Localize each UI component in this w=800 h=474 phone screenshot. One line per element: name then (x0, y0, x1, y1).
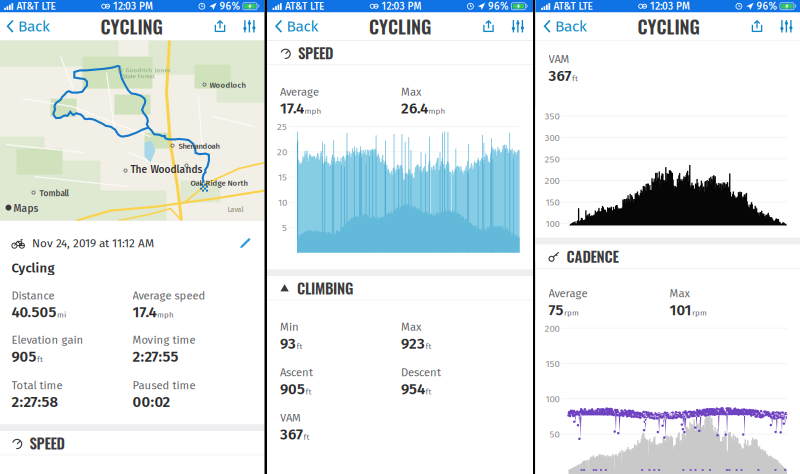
staticText: 5 (282, 222, 287, 234)
staticText: 905 (11, 348, 36, 366)
staticText: 20 (277, 146, 287, 158)
staticText: SPEED (29, 432, 64, 454)
staticText: VAM (548, 53, 569, 66)
staticText: Maps (13, 203, 38, 215)
staticText: 150 (545, 196, 559, 208)
staticText: mph (157, 310, 174, 320)
staticText: Woodloch (209, 81, 245, 90)
staticText: 75 (548, 301, 563, 319)
staticText: 17.4 (132, 303, 156, 321)
staticText: 96% (756, 0, 777, 12)
staticText: 367 (548, 67, 571, 85)
button[interactable]: Filter (503, 12, 533, 40)
staticText: Distance (11, 289, 54, 302)
button[interactable]: Edit (239, 237, 251, 249)
staticText: CLIMBING (297, 277, 353, 299)
staticText: 100 (545, 393, 559, 405)
staticText: 50 (549, 429, 559, 440)
staticText: mph (428, 106, 445, 116)
staticText: Cycling (11, 260, 54, 276)
staticText: Descent (401, 366, 441, 379)
staticText: ft (303, 432, 309, 442)
staticText: mi (57, 310, 66, 320)
button[interactable]: Share (742, 12, 771, 40)
staticText: Tomball (39, 189, 68, 198)
staticText: ft (572, 74, 578, 83)
staticText: Average (280, 85, 319, 99)
staticText: W. Goodrich Jones (117, 67, 170, 74)
staticText: 2:27:55 (132, 348, 178, 366)
staticText: 00:02 (132, 393, 170, 411)
staticText: 12:03 PM (113, 0, 153, 12)
staticText: 96% (219, 0, 240, 12)
staticText: 17.4 (280, 100, 304, 117)
button[interactable]: Share (205, 12, 234, 40)
staticText: 200 (544, 323, 559, 334)
staticText: ft (305, 387, 311, 396)
staticText: Ascent (280, 366, 313, 379)
staticText: 350 (544, 110, 559, 122)
button[interactable]: Filter (234, 12, 264, 40)
staticText: 923 (401, 335, 425, 353)
button[interactable]: Share (474, 12, 503, 40)
staticText: Paused time (132, 379, 195, 392)
staticText: Shenandoah (178, 142, 219, 151)
button[interactable]: Back (535, 12, 595, 40)
staticText: 15 (278, 171, 287, 183)
staticText: ft (425, 342, 431, 351)
staticText: ft (37, 354, 43, 364)
staticText: 12:03 PM (650, 0, 690, 12)
staticText: rpm (692, 308, 707, 318)
staticText: 150 (545, 358, 559, 369)
staticText: Back (18, 17, 50, 35)
staticText: CYCLING (637, 13, 699, 40)
staticText: Back (555, 17, 587, 35)
staticText: The Woodlands (130, 164, 202, 176)
staticText: Min (280, 320, 299, 334)
staticText: Elevation gain (11, 333, 83, 347)
staticText: Max (401, 320, 421, 334)
staticText: 905 (280, 380, 305, 398)
button[interactable]: Filter (771, 12, 800, 40)
staticText: Max (669, 287, 689, 300)
staticText: Average speed (132, 289, 205, 302)
staticText: mph (304, 106, 321, 116)
staticText: 101 (669, 301, 691, 319)
staticText: Nov 24, 2019 at 11:12 AM (32, 236, 154, 250)
staticText: 250 (544, 153, 559, 165)
staticText: AT&T LTE (16, 0, 55, 12)
staticText: 93 (280, 335, 296, 353)
staticText: 954 (401, 380, 425, 398)
staticText: 300 (544, 132, 559, 143)
staticText: 40.505 (11, 303, 56, 321)
staticText: 26.4 (401, 100, 428, 117)
staticText: AT&T LTE (553, 0, 592, 12)
staticText: 25 (277, 121, 287, 132)
staticText: Back (286, 17, 318, 35)
staticText: 2:27:58 (11, 393, 58, 411)
staticText: State Forest (122, 73, 154, 80)
staticText: 10 (278, 197, 287, 208)
staticText: 12:03 PM (381, 0, 421, 12)
staticText: ft (425, 387, 431, 396)
staticText: 200 (544, 175, 559, 186)
staticText: Max (401, 85, 421, 99)
staticText: VAM (280, 411, 301, 424)
staticText: 367 (280, 426, 303, 443)
staticText: 96% (488, 0, 509, 12)
staticText: Laval (227, 206, 243, 214)
staticText: CADENCE (566, 245, 618, 267)
staticText: Total time (11, 379, 62, 392)
staticText: SPEED (298, 42, 333, 63)
staticText: CYCLING (369, 13, 431, 40)
staticText: rpm (564, 308, 579, 318)
button[interactable]: Back (267, 12, 326, 40)
staticText: Average (548, 287, 587, 300)
button[interactable]: Back (0, 12, 58, 40)
staticText: Oak Ridge North (190, 179, 247, 188)
staticText: ft (296, 342, 302, 351)
staticText: Moving time (132, 333, 195, 347)
staticText: CYCLING (100, 13, 162, 40)
staticText: 100 (545, 218, 559, 229)
staticText: AT&T LTE (285, 0, 324, 12)
